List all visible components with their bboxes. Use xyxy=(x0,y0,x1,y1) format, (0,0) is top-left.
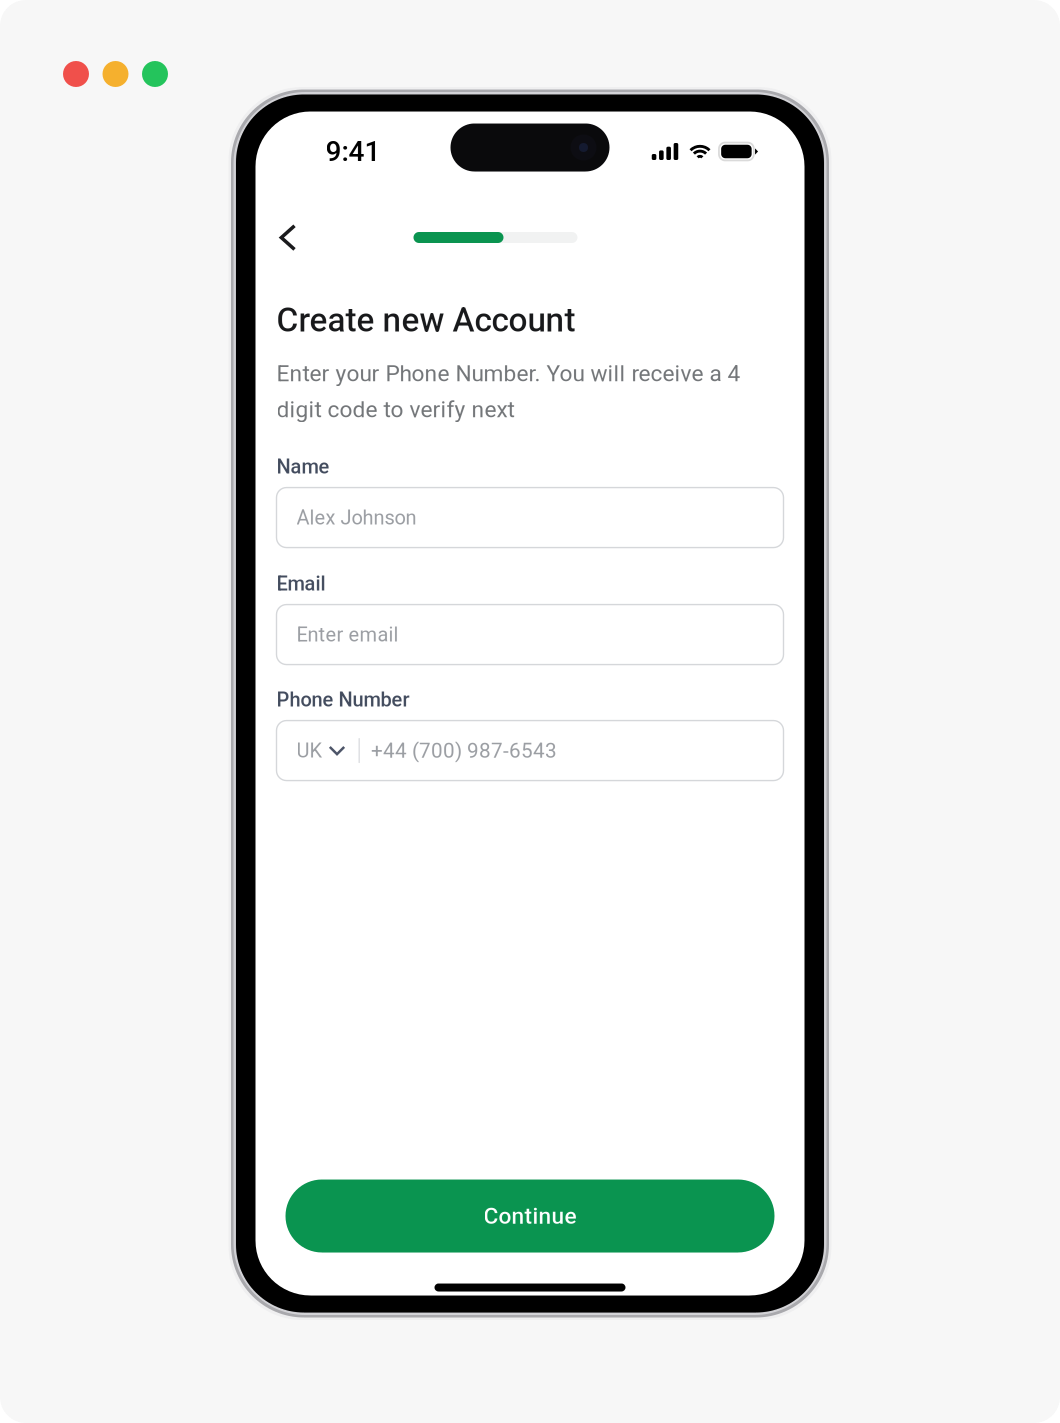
button[interactable]: Continue xyxy=(285,1179,774,1252)
staticText: 9:41 xyxy=(325,135,380,168)
staticText: Continue xyxy=(483,1203,576,1229)
staticText: Phone Number xyxy=(276,688,409,711)
staticText: Create new Account xyxy=(276,300,575,340)
staticText: Email xyxy=(276,572,325,595)
button[interactable]: Back xyxy=(255,214,312,261)
button[interactable]: Alex Johnson xyxy=(276,488,783,548)
button[interactable]: Enter email xyxy=(276,605,783,665)
staticText: +44 (700) 987-6543 xyxy=(371,738,557,763)
staticText: Alex Johnson xyxy=(296,506,416,529)
staticText: Enter your Phone Number. You will receiv… xyxy=(276,360,740,387)
button[interactable]: UK xyxy=(276,721,783,781)
staticText: UK xyxy=(296,739,322,762)
staticText: digit code to verify next xyxy=(276,396,514,423)
staticText: Enter email xyxy=(296,623,398,646)
staticText: Name xyxy=(276,455,329,478)
